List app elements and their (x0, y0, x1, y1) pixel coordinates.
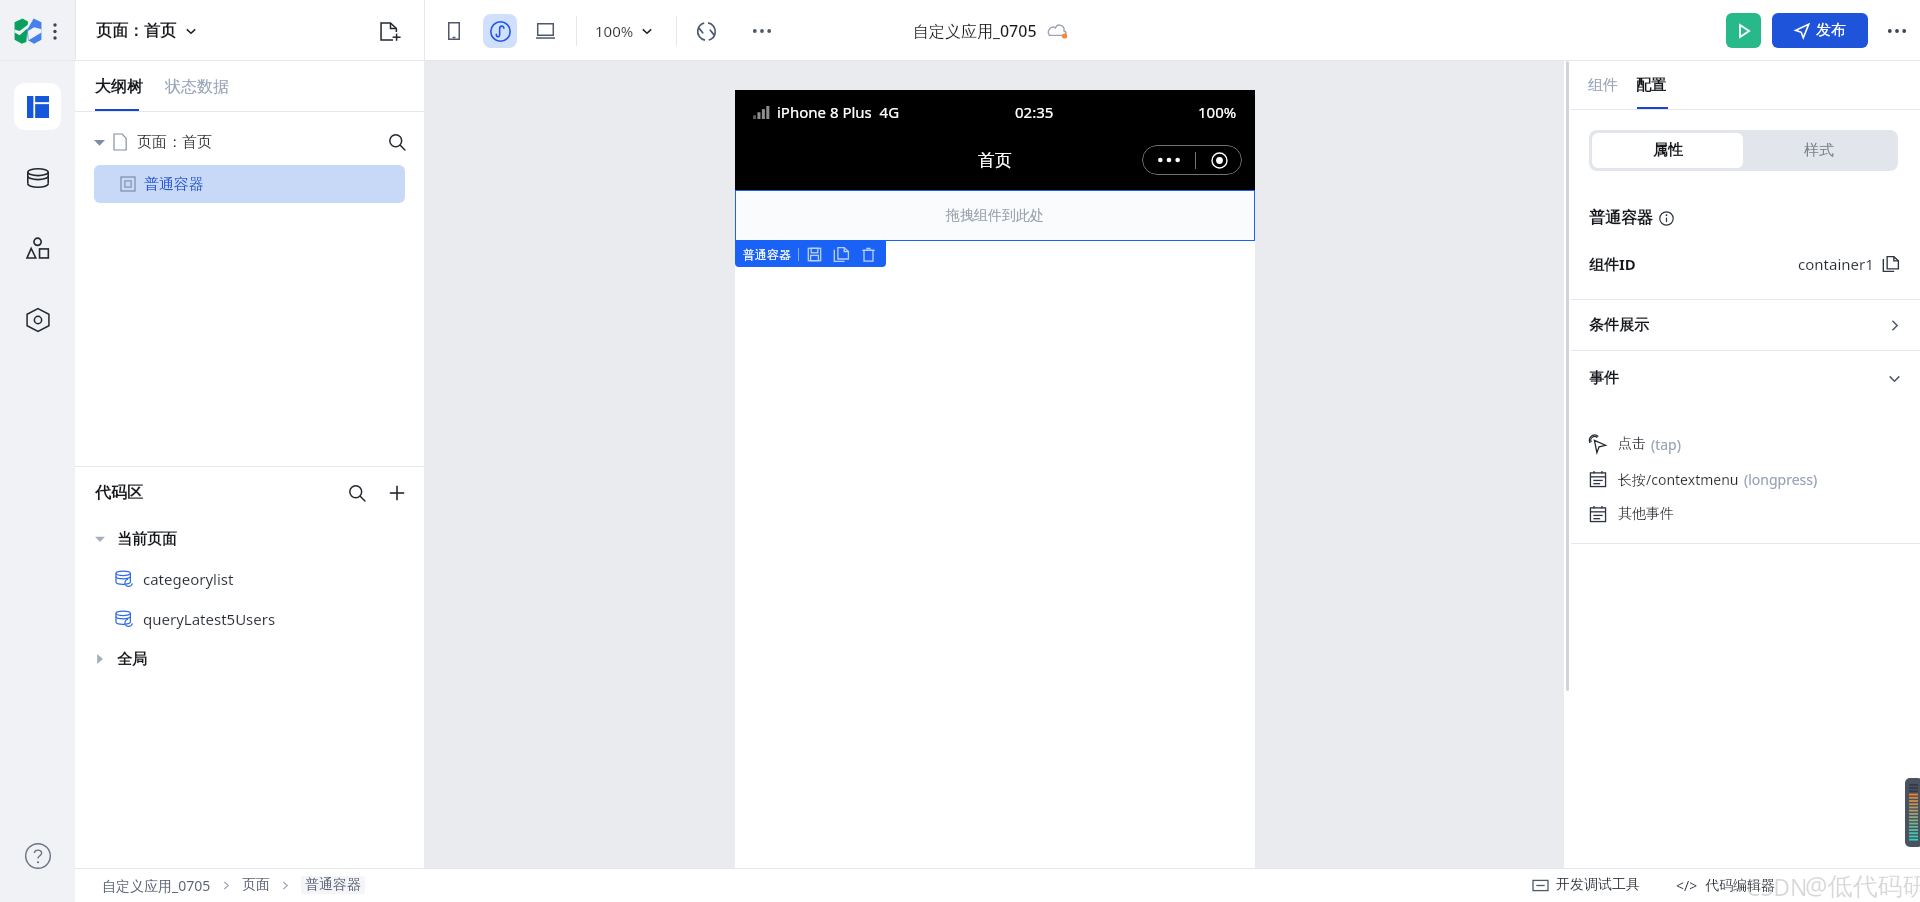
button[interactable]: Components (14, 225, 61, 272)
staticText: 全局 (117, 650, 147, 669)
staticText: 其他事件 (1618, 505, 1674, 523)
staticText: 样式 (1804, 141, 1834, 160)
staticText: categeorylist (143, 569, 234, 589)
button[interactable]: Settings (14, 296, 61, 343)
button[interactable]: Mini program (483, 14, 517, 48)
staticText: 普通容器 (743, 247, 791, 262)
staticText: @低代码研帮逆师 (1805, 868, 1920, 902)
button[interactable]: queryLatest5Users (75, 599, 424, 639)
button[interactable]: 点击 (1571, 430, 1920, 458)
button[interactable]: 页面：首页 (96, 21, 198, 41)
staticText: 代码区 (95, 483, 143, 503)
button[interactable]: </> (1676, 876, 1775, 895)
button[interactable]: Options (1886, 20, 1908, 42)
staticText: 长按/contextmenu (1618, 470, 1739, 489)
staticText: 100% (1198, 102, 1237, 122)
button[interactable]: 长按/contextmenu (1571, 465, 1920, 493)
staticText: (longpress) (1744, 470, 1818, 489)
button[interactable]: Save (807, 247, 822, 262)
staticText: </> (1676, 876, 1698, 895)
button[interactable]: Phone (437, 14, 471, 48)
staticText: 拖拽组件到此处 (946, 207, 1044, 225)
button[interactable]: 发布 (1772, 13, 1868, 48)
staticText: 02:35 (1015, 102, 1054, 122)
button[interactable]: 当前页面 (75, 519, 424, 559)
staticText: 事件 (1589, 369, 1619, 388)
staticText: 代码编辑器 (1705, 877, 1775, 895)
button[interactable]: 条件展示 (1571, 300, 1920, 350)
staticText: CSDN (1746, 871, 1808, 902)
button[interactable]: Preview (1726, 13, 1761, 48)
staticText: 自定义应用_0705 (102, 876, 211, 895)
button[interactable]: 事件 (1571, 351, 1920, 405)
button[interactable]: 其他事件 (1571, 500, 1920, 528)
staticText: 普通容器 (305, 876, 361, 894)
staticText: 首页 (978, 150, 1012, 171)
staticText: 组件ID (1589, 254, 1636, 274)
staticText: 开发调试工具 (1556, 876, 1640, 894)
staticText: (tap) (1651, 435, 1681, 454)
staticText: 状态数据 (165, 77, 229, 97)
staticText: 100% (595, 21, 634, 41)
button[interactable]: Copy (834, 247, 849, 262)
button[interactable]: 样式 (1743, 133, 1895, 168)
staticText: 点击 (1618, 435, 1646, 453)
staticText: 页面：首页 (137, 133, 212, 152)
staticText: 普通容器 (1589, 208, 1653, 228)
staticText: 发布 (1816, 21, 1846, 40)
staticText: queryLatest5Users (143, 609, 276, 629)
staticText: 页面 (242, 876, 270, 894)
button[interactable]: Search tree (385, 130, 409, 154)
button[interactable]: 属性 (1592, 133, 1743, 168)
staticText: 属性 (1653, 141, 1683, 160)
button[interactable]: categeorylist (75, 559, 424, 599)
button[interactable]: 开发调试工具 (1533, 876, 1640, 894)
staticText: 当前页面 (117, 530, 177, 549)
button[interactable]: New page (376, 17, 404, 45)
button[interactable]: Delete (861, 247, 876, 262)
button[interactable]: Desktop (528, 14, 562, 48)
button[interactable]: Refresh (691, 16, 721, 46)
staticText: 普通容器 (144, 175, 204, 194)
button[interactable]: Search code (345, 481, 369, 505)
staticText: 自定义应用_0705 (913, 20, 1037, 42)
button[interactable]: Add code (385, 481, 409, 505)
staticText: 配置 (1636, 76, 1666, 95)
button[interactable]: Layout (14, 83, 61, 130)
button[interactable]: 100% (595, 21, 654, 41)
button[interactable]: 普通容器 (94, 165, 405, 203)
staticText: 条件展示 (1589, 316, 1649, 335)
button[interactable]: Copy ID (1883, 256, 1900, 273)
button[interactable]: 全局 (75, 639, 424, 679)
staticText: container1 (1798, 254, 1874, 274)
staticText: 组件 (1588, 76, 1618, 95)
staticText: iPhone 8 Plus 4G (777, 102, 900, 122)
staticText: 页面：首页 (96, 21, 176, 41)
staticText: 大纲树 (95, 77, 143, 97)
button[interactable]: Help (14, 832, 62, 880)
button[interactable]: More (747, 16, 777, 46)
button[interactable]: Data (14, 154, 61, 201)
